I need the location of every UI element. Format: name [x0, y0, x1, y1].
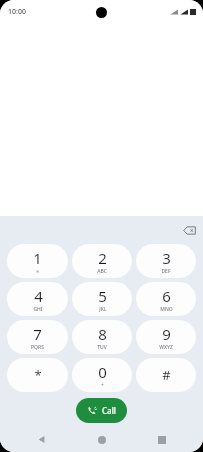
staticText: ∞ [35, 268, 40, 274]
staticText: # [162, 366, 171, 384]
button[interactable]: 9 [136, 320, 196, 354]
staticText: 0 [98, 362, 107, 382]
button[interactable]: Backspace [178, 219, 200, 241]
staticText: 4 [34, 286, 43, 306]
staticText: GHI [33, 306, 43, 313]
button[interactable]: 4 [7, 282, 68, 316]
staticText: 6 [162, 286, 171, 306]
button[interactable]: 3 [136, 244, 196, 278]
button[interactable]: Call [76, 398, 127, 423]
button[interactable]: Home [82, 427, 122, 452]
staticText: 9 [162, 324, 171, 344]
staticText: 2 [98, 248, 107, 268]
button[interactable]: 1 [7, 244, 68, 278]
staticText: ABC [97, 268, 107, 275]
button[interactable]: 2 [72, 244, 132, 278]
staticText: DEF [161, 268, 171, 275]
staticText: 5 [98, 286, 107, 306]
button[interactable]: 6 [136, 282, 196, 316]
staticText: + [101, 382, 104, 389]
staticText: JKL [99, 306, 107, 313]
button[interactable]: * [7, 358, 68, 392]
staticText: MNO [160, 306, 173, 313]
staticText: 3 [162, 248, 171, 268]
button[interactable]: 0 [72, 358, 132, 392]
staticText: 7 [33, 324, 42, 344]
staticText: * [34, 366, 42, 384]
button[interactable]: 7 [7, 320, 68, 354]
button[interactable]: 8 [72, 320, 132, 354]
staticText: 1 [33, 248, 42, 268]
button[interactable]: # [136, 358, 196, 392]
staticText: PQRS [31, 344, 44, 351]
button[interactable]: Recent apps [142, 427, 182, 452]
staticText: WXYZ [159, 344, 173, 351]
staticText: TUV [97, 344, 107, 351]
staticText: Call [102, 405, 116, 416]
staticText: 10:00 [8, 7, 26, 17]
staticText: 8 [98, 324, 107, 344]
button[interactable]: 5 [72, 282, 132, 316]
button[interactable]: Back [21, 427, 61, 452]
